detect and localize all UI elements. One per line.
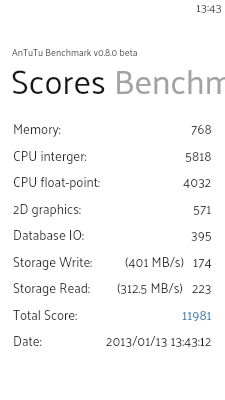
button[interactable]: Total Score: bbox=[0, 302, 225, 328]
staticText: 768 bbox=[191, 117, 212, 141]
button[interactable]: Date: bbox=[0, 328, 225, 354]
staticText: AnTuTu Benchmark v0.8.0 beta bbox=[12, 44, 138, 61]
staticText: 5818 bbox=[185, 144, 212, 168]
staticText: Memory: bbox=[13, 117, 61, 141]
staticText: Storage Read: bbox=[13, 276, 90, 300]
staticText: CPU interger: bbox=[13, 144, 87, 168]
button[interactable]: Storage Read: bbox=[0, 275, 225, 301]
staticText: Database IO: bbox=[13, 223, 84, 247]
button[interactable]: Storage Write: bbox=[0, 249, 225, 275]
button[interactable]: 2D graphics: bbox=[0, 196, 225, 222]
staticText: 395 bbox=[191, 223, 212, 247]
staticText: 2D graphics: bbox=[13, 197, 81, 221]
staticText: 223 bbox=[192, 276, 212, 300]
staticText: 174 bbox=[193, 250, 212, 274]
button[interactable]: CPU interger: bbox=[0, 143, 225, 169]
staticText: Date: bbox=[13, 329, 42, 353]
staticText: CPU float-point: bbox=[13, 170, 100, 194]
button[interactable]: Scores bbox=[11, 50, 106, 110]
staticText: 2013/01/13 13:43:12 bbox=[106, 329, 212, 353]
button[interactable]: Memory: bbox=[0, 116, 225, 142]
staticText: 13:43 bbox=[196, 0, 222, 16]
staticText: (312.5 MB/s) bbox=[117, 276, 183, 300]
staticText: 571 bbox=[193, 197, 212, 221]
staticText: Total Score: bbox=[13, 303, 77, 327]
button[interactable]: CPU float-point: bbox=[0, 169, 225, 195]
staticText: (401 MB/s) bbox=[125, 250, 184, 274]
button[interactable]: Database IO: bbox=[0, 222, 225, 248]
staticText: Storage Write: bbox=[13, 250, 93, 274]
staticText: 4032 bbox=[183, 170, 212, 194]
button[interactable]: Benchmark bbox=[114, 50, 225, 110]
staticText: 11981 bbox=[182, 303, 212, 327]
